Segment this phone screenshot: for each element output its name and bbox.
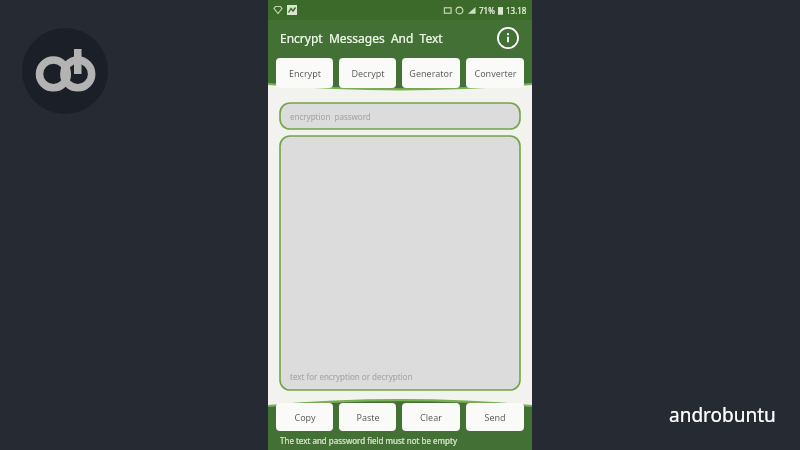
staticText: Copy <box>294 411 316 423</box>
button[interactable]: Encrypt <box>276 58 333 88</box>
staticText: Decrypt <box>351 67 385 79</box>
staticText: Converter <box>474 67 517 79</box>
button[interactable]: Send <box>466 403 524 431</box>
staticText: Paste <box>356 411 380 423</box>
staticText: Encrypt Messages And Text <box>280 30 443 46</box>
button[interactable]: Paste <box>339 403 396 431</box>
button[interactable]: Converter <box>466 58 524 88</box>
staticText: encryption password <box>290 111 371 122</box>
staticText: Send <box>484 411 506 423</box>
staticText: androbuntu <box>669 402 776 428</box>
staticText: 13.18 <box>506 5 527 16</box>
button[interactable]: Generator <box>402 58 460 88</box>
button[interactable]: Decrypt <box>339 58 396 88</box>
staticText: Generator <box>409 67 453 79</box>
staticText: 71% <box>479 5 495 16</box>
staticText: text for encryption or decryption <box>290 371 413 382</box>
staticText: The text and password field must not be … <box>280 435 457 446</box>
staticText: Encrypt <box>289 67 321 79</box>
staticText: Clear <box>420 411 442 423</box>
button[interactable]: Info <box>496 26 520 50</box>
button[interactable]: text for encryption or decryption <box>280 136 520 390</box>
button[interactable]: Clear <box>402 403 460 431</box>
button[interactable]: encryption password <box>280 103 520 129</box>
button[interactable]: Copy <box>276 403 333 431</box>
